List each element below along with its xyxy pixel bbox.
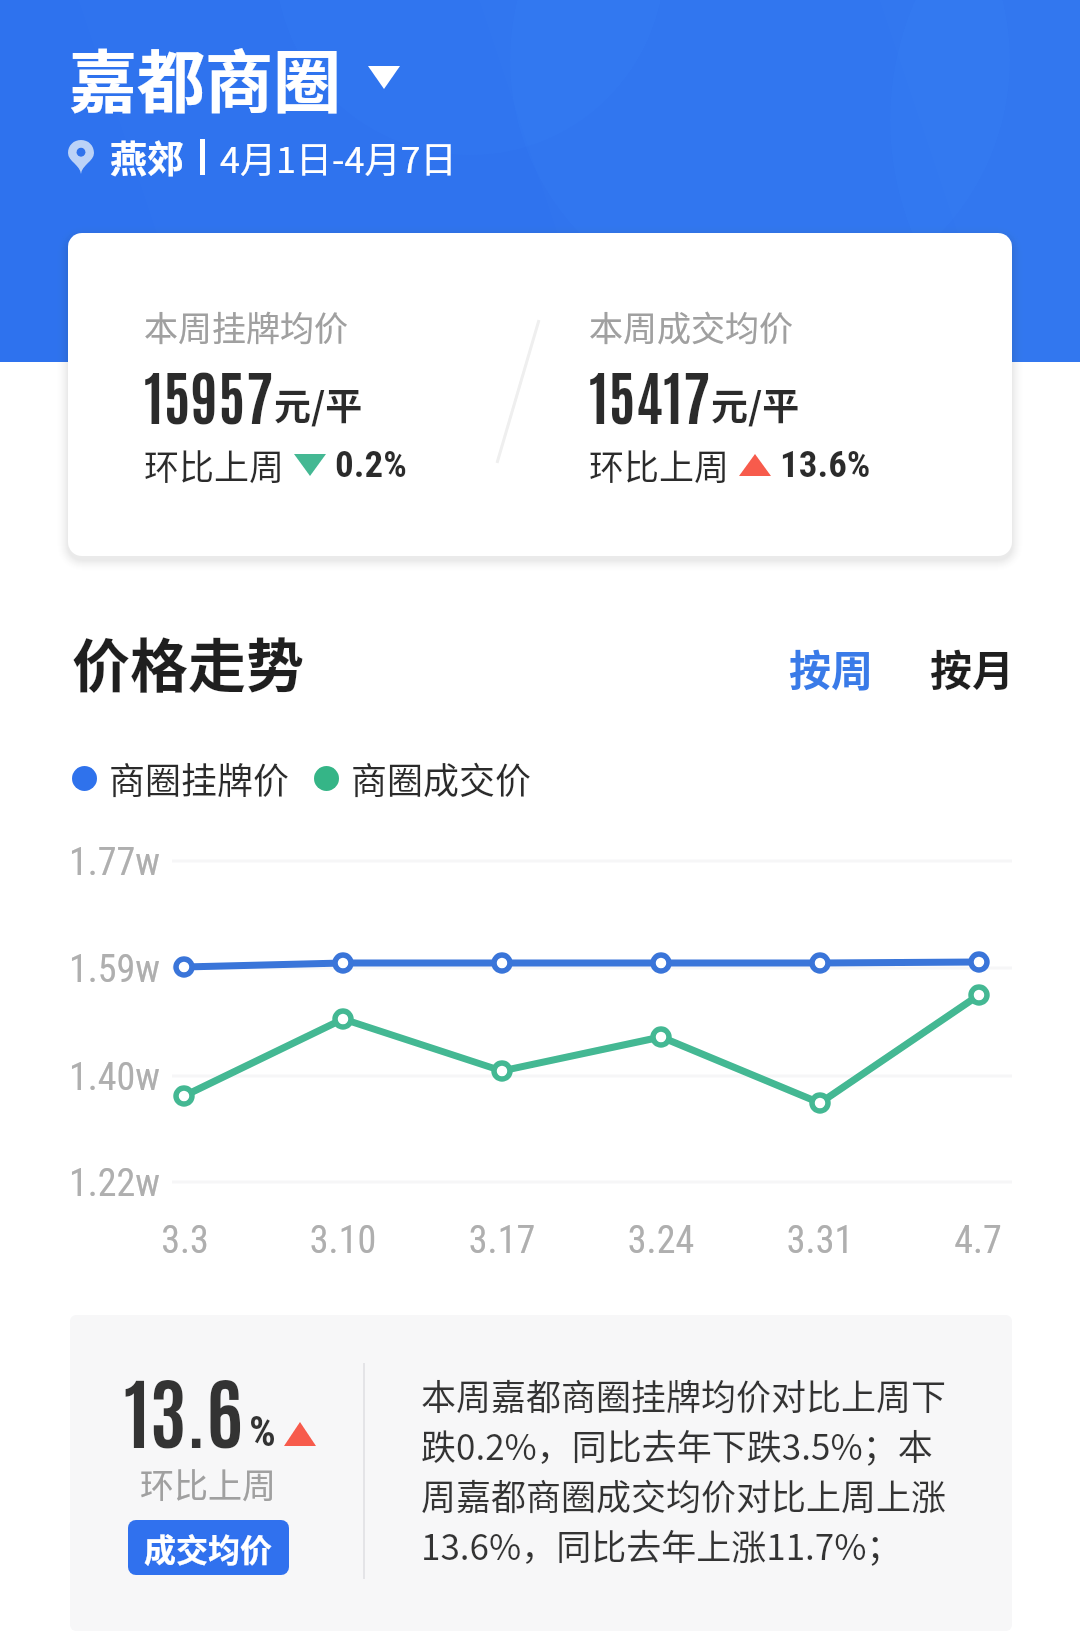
staticText: 燕郊 [110,130,184,184]
staticText: 3.3 [115,1218,255,1263]
button[interactable]: 成交均价 [128,1520,289,1575]
staticText: 按月 [930,637,1015,698]
staticText: 3.31 [750,1218,890,1263]
staticText: 嘉都商圈 [69,28,342,126]
staticText: 13.6% [780,443,871,486]
button[interactable]: 按月 [922,622,1023,703]
staticText: 4.7 [908,1218,1048,1263]
staticText: 1.59w [69,947,160,992]
staticText: 1.22w [69,1161,160,1206]
staticText: 成交均价 [144,1525,273,1571]
staticText: 本周成交均价 [589,302,793,351]
staticText: 本周嘉都商圈挂牌均价对比上周下跌0.2%，同比去年下跌3.5%；本周嘉都商圈成交… [421,1369,963,1570]
staticText: 1.40w [69,1055,160,1100]
staticText: 4月1日-4月7日 [220,131,457,183]
staticText: 13.6 [124,1358,243,1459]
staticText: 3.24 [591,1218,731,1263]
button[interactable]: 按周 [781,622,882,703]
staticText: 商圈成交价 [351,752,532,804]
staticText: 15957 [144,356,274,432]
staticText: 元/平 [274,377,363,431]
staticText: 15417 [589,356,711,432]
staticText: 3.10 [273,1218,413,1263]
staticText: 按周 [789,637,874,698]
staticText: 环比上周 [144,439,285,490]
staticText: % [249,1407,276,1456]
staticText: 0.2% [335,443,407,486]
staticText: 1.77w [69,840,160,885]
staticText: 本周挂牌均价 [144,302,348,351]
staticText: 3.17 [432,1218,572,1263]
staticText: 元/平 [711,377,800,431]
button[interactable]: 切换商圈 [362,57,406,97]
staticText: 商圈挂牌价 [109,752,290,804]
staticText: 环比上周 [589,439,730,490]
staticText: 价格走势 [72,620,305,704]
staticText: 环比上周 [140,1459,276,1508]
